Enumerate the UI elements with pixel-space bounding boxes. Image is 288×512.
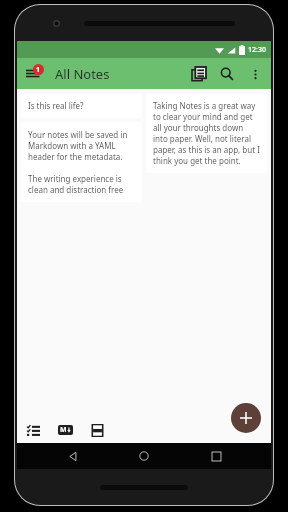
staticText: 1 [36,65,41,75]
button[interactable]: Change view layout [185,60,213,88]
button[interactable]: Open navigation drawer, 1 notification [17,58,49,89]
button[interactable]: Markdown preview [53,418,77,442]
button[interactable]: Notebooks [85,418,109,442]
staticText: 12:30 [248,45,266,55]
button[interactable]: Taking Notes is a great way to clear you… [146,93,267,173]
staticText: Taking Notes is a great way to clear you… [153,100,260,166]
button[interactable]: More options [241,60,269,88]
button[interactable]: Recent apps [200,443,232,469]
staticText: Your notes will be saved in Markdown wit… [28,129,135,195]
button[interactable]: Home [128,443,160,469]
button[interactable]: Back [57,443,89,469]
staticText: All Notes [55,65,110,83]
button[interactable]: Search [213,60,241,88]
button[interactable]: New note [231,403,261,433]
staticText: M [60,425,67,435]
button[interactable]: Checklist [21,418,45,442]
staticText: Is this real life? [28,100,84,111]
button[interactable]: Is this real life? [21,93,142,118]
button[interactable]: Your notes will be saved in Markdown wit… [21,122,142,202]
